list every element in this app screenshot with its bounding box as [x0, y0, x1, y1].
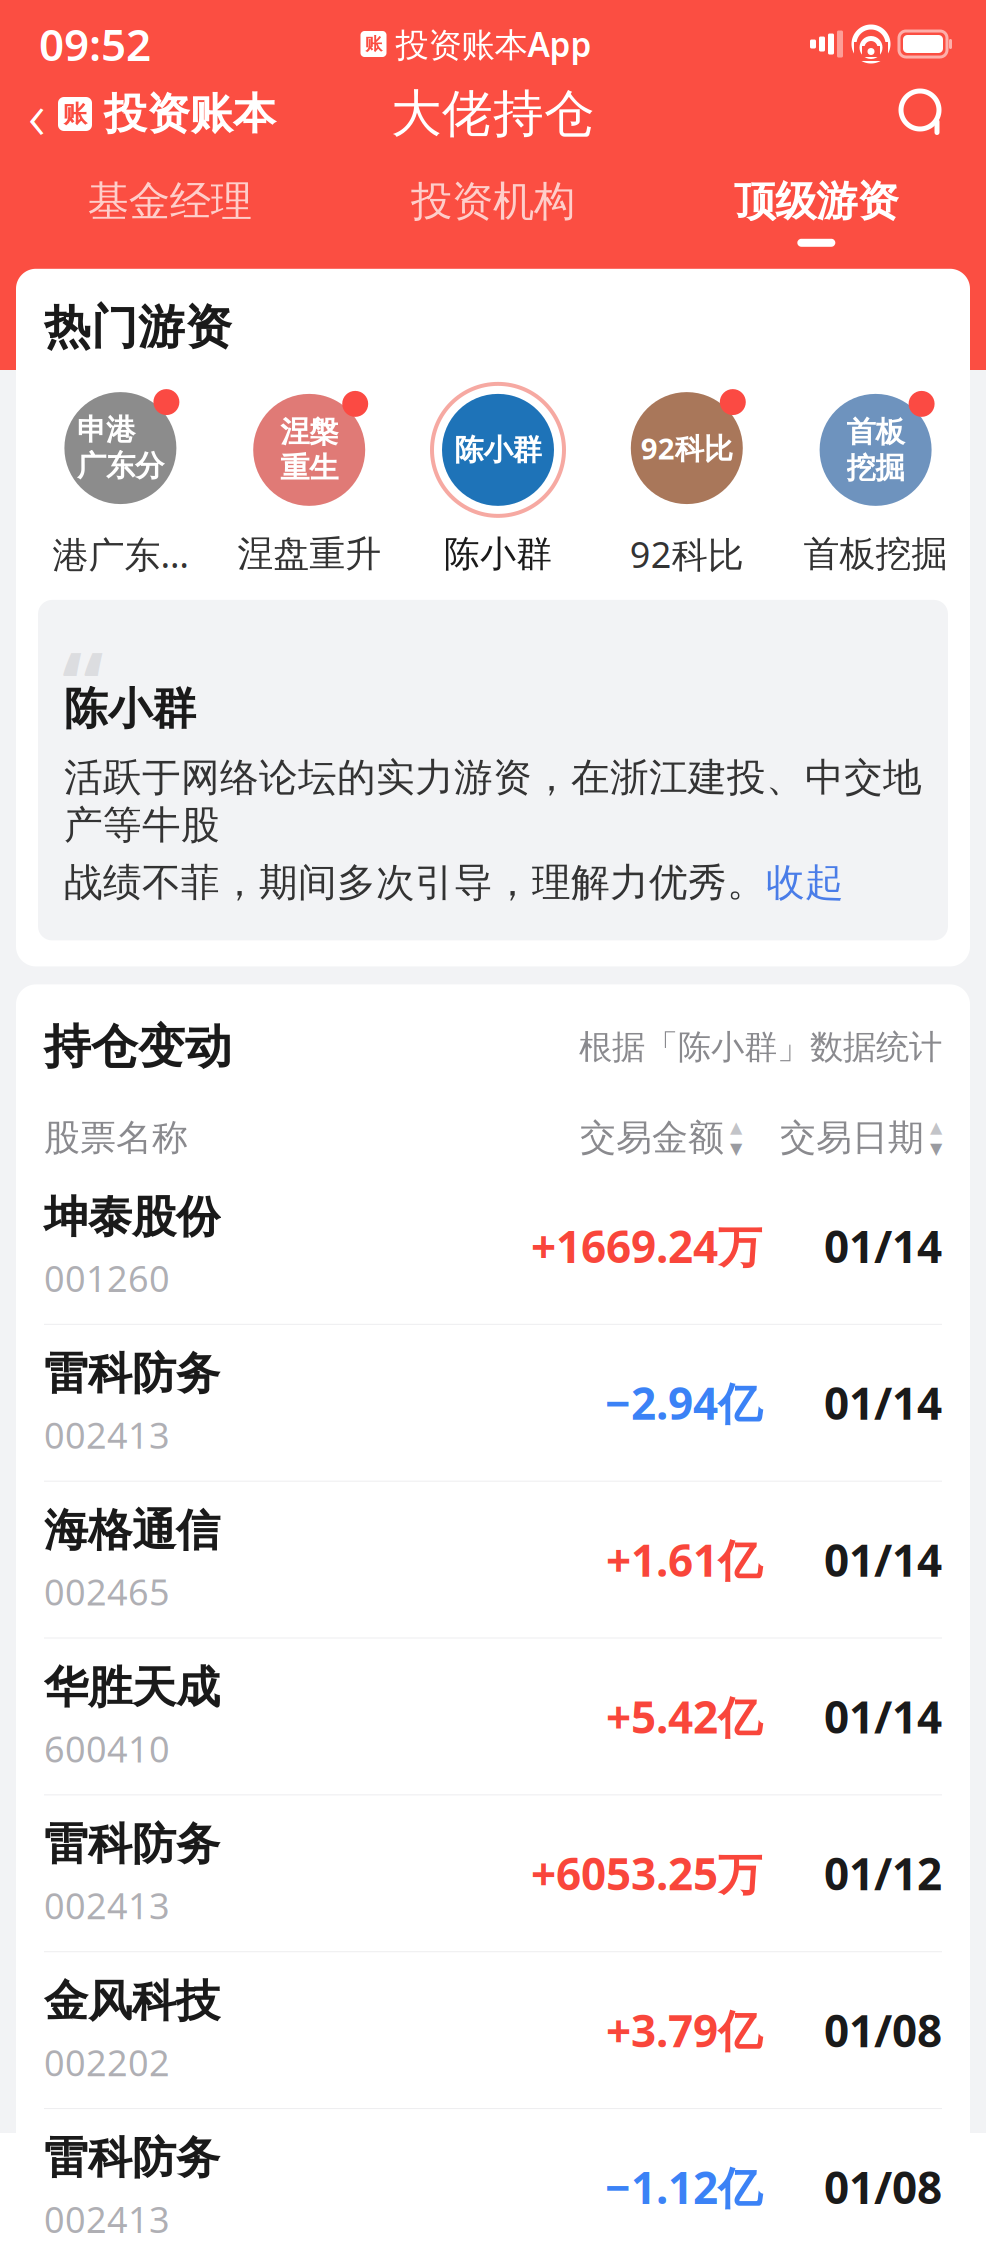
staticText: 大佬持仓 [391, 83, 595, 145]
staticText: 600410 [44, 1725, 170, 1772]
staticText: 华胜天成 [44, 1660, 220, 1714]
staticText: ▼ [730, 1139, 742, 1158]
staticText: 活跃于网络论坛的实力游资，在浙江建投、中交地产等牛股 [64, 754, 922, 849]
staticText: ▲ [930, 1118, 942, 1136]
staticText: 申港 广东分 [77, 412, 164, 484]
staticText: 002413 [44, 1411, 170, 1459]
button[interactable]: 金风科技 [16, 1951, 970, 2108]
staticText: 陈小群 [454, 432, 541, 468]
staticText: +1.61亿 [606, 1530, 762, 1589]
staticText: 雷科防务 [44, 2131, 220, 2185]
staticText: 持仓变动 [44, 1018, 232, 1076]
button[interactable]: 雷科防务 [16, 1324, 970, 1481]
button[interactable]: 交易日期 [780, 1116, 942, 1160]
staticText: “ [62, 622, 104, 746]
button[interactable]: 雷科防务 [16, 2108, 970, 2265]
staticText: −1.12亿 [605, 2158, 762, 2216]
staticText: 账 [63, 99, 87, 129]
staticText: 基金经理 [88, 176, 252, 227]
staticText: ▼ [930, 1139, 942, 1158]
staticText: 交易金额 [580, 1116, 724, 1160]
staticText: 海格通信 [44, 1504, 220, 1558]
button[interactable]: 基金经理 [8, 172, 331, 251]
button[interactable]: 搜索 [892, 82, 986, 146]
button[interactable]: 首板 挖掘 [781, 382, 970, 576]
staticText: 01/14 [824, 1530, 942, 1589]
staticText: 92科比 [630, 530, 744, 578]
staticText: 股票名称 [44, 1116, 188, 1160]
button[interactable]: 坤泰股份 [16, 1168, 970, 1324]
staticText: 01/14 [824, 1217, 942, 1275]
staticText: 战绩不菲，期间多次引导，理解力优秀。 [64, 859, 766, 906]
button[interactable]: 交易金额 [580, 1116, 742, 1160]
button[interactable]: 投资机构 [331, 172, 655, 251]
button[interactable]: 返回 投资账本 [0, 60, 276, 168]
staticText: 001260 [44, 1254, 170, 1302]
staticText: 92科比 [641, 429, 733, 468]
staticText: 01/08 [824, 2001, 942, 2059]
button[interactable]: 92科比 [592, 380, 781, 578]
staticText: +1669.24万 [531, 1217, 762, 1275]
staticText: 002413 [44, 2195, 170, 2243]
staticText: 09:52 [39, 15, 151, 73]
staticText: 热门游资 [44, 299, 232, 356]
button[interactable]: 涅槃 重生 [215, 382, 404, 576]
staticText: +6053.25万 [531, 1844, 762, 1902]
button[interactable]: 顶级游资 [655, 172, 978, 251]
button[interactable]: 陈小群 [404, 382, 592, 576]
staticText: +3.79亿 [606, 2001, 762, 2059]
staticText: ▲ [730, 1118, 742, 1136]
staticText: 首板挖掘 [804, 532, 948, 576]
staticText: 收起 [766, 859, 844, 906]
staticText: 002202 [44, 2038, 170, 2086]
staticText: 根据「陈小群」数据统计 [579, 1027, 942, 1067]
staticText: ‹ [28, 70, 46, 158]
staticText: +5.42亿 [606, 1687, 762, 1746]
button[interactable]: 雷科防务 [16, 1794, 970, 1951]
button[interactable]: 收起 [766, 859, 844, 906]
staticText: 顶级游资 [734, 176, 898, 227]
staticText: 投资机构 [411, 176, 575, 227]
staticText: 金风科技 [44, 1974, 220, 2028]
staticText: 涅槃 重生 [280, 414, 338, 486]
staticText: −2.94亿 [605, 1373, 762, 1432]
staticText: 投资账本 [104, 88, 276, 140]
staticText: 01/12 [824, 1844, 942, 1902]
staticText: 01/08 [824, 2158, 942, 2216]
staticText: 首板 挖掘 [847, 414, 905, 486]
button[interactable]: 海格通信 [16, 1481, 970, 1638]
button[interactable]: 华胜天成 [16, 1637, 970, 1794]
staticText: 002413 [44, 1881, 170, 1929]
staticText: 002465 [44, 1568, 170, 1615]
staticText: 账 [365, 33, 382, 55]
staticText: 陈小群 [444, 532, 552, 576]
staticText: 雷科防务 [44, 1347, 220, 1401]
staticText: 01/14 [824, 1687, 942, 1746]
staticText: 港广东… [52, 530, 188, 578]
staticText: 01/14 [824, 1373, 942, 1432]
staticText: 雷科防务 [44, 1817, 220, 1871]
staticText: 投资账本App [395, 22, 591, 66]
staticText: 涅盘重升 [237, 532, 381, 576]
staticText: 交易日期 [780, 1116, 924, 1160]
button[interactable]: 申港 广东分 [26, 380, 215, 578]
staticText: 坤泰股份 [44, 1190, 220, 1244]
staticText: 陈小群 [64, 682, 196, 736]
